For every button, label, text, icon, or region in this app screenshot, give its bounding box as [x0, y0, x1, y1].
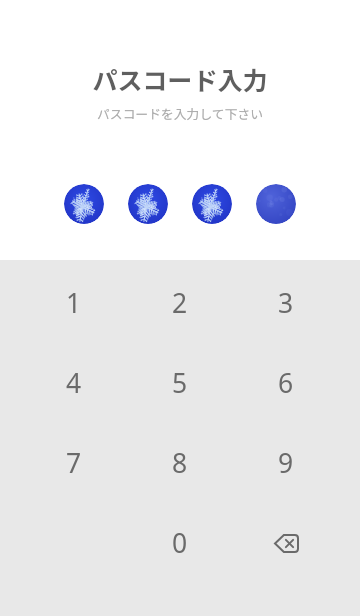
- button[interactable]: Backspace: [233, 503, 339, 583]
- button[interactable]: 9: [233, 423, 339, 503]
- staticText: 0: [172, 525, 188, 561]
- button[interactable]: 8: [127, 423, 233, 503]
- staticText: 9: [278, 445, 294, 481]
- button[interactable]: 0: [127, 503, 233, 583]
- button[interactable]: 7: [21, 423, 127, 503]
- staticText: 8: [172, 445, 188, 481]
- staticText: パスコード入力: [92, 61, 268, 97]
- staticText: 7: [66, 445, 82, 481]
- button[interactable]: 3: [233, 263, 339, 343]
- button[interactable]: 4: [21, 343, 127, 423]
- staticText: 3: [278, 285, 294, 321]
- staticText: パスコードを入力して下さい: [97, 104, 263, 123]
- button[interactable]: 5: [127, 343, 233, 423]
- staticText: 6: [278, 365, 294, 401]
- button[interactable]: 2: [127, 263, 233, 343]
- staticText: 5: [172, 365, 188, 401]
- button[interactable]: 1: [21, 263, 127, 343]
- staticText: 2: [172, 285, 188, 321]
- staticText: 1: [66, 285, 82, 321]
- button[interactable]: 6: [233, 343, 339, 423]
- other: Backspace: [274, 534, 299, 553]
- staticText: 4: [66, 365, 82, 401]
